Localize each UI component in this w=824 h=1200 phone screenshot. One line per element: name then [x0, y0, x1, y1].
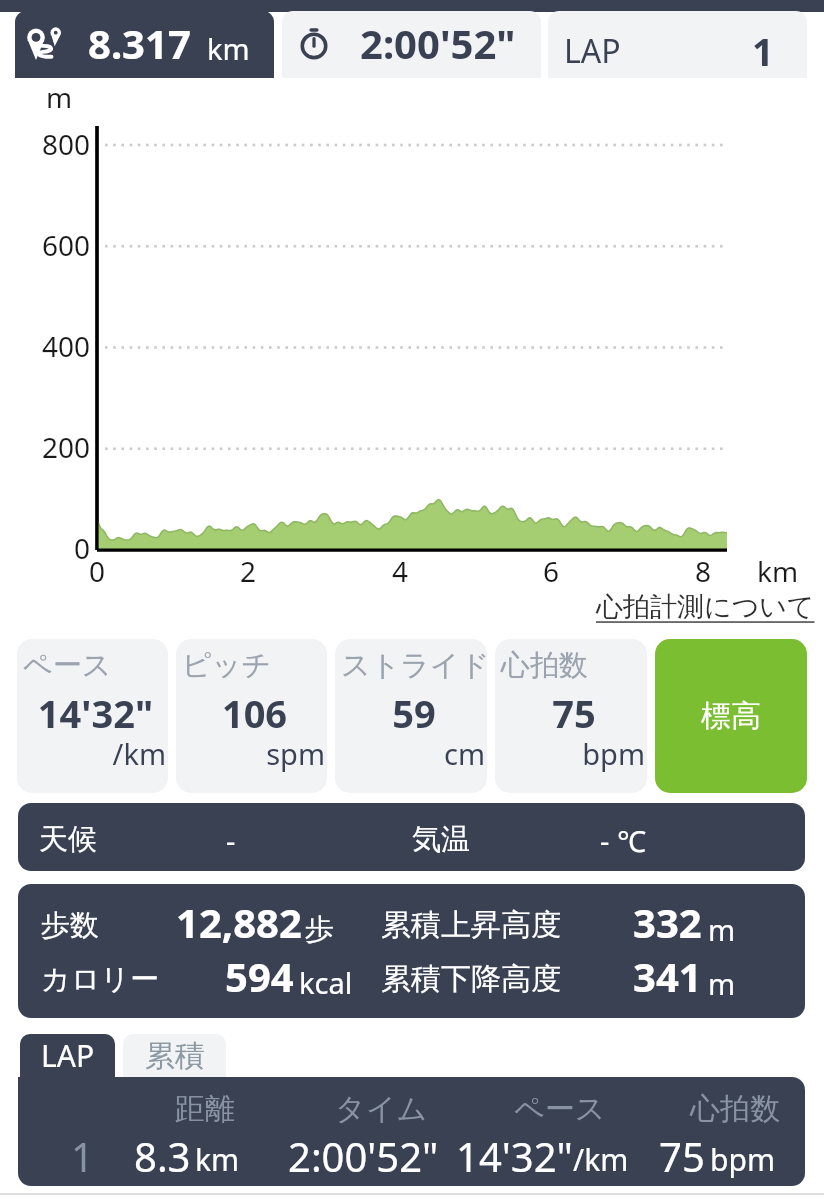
staticText: 600: [0, 226, 90, 264]
staticText: LAP: [564, 29, 621, 73]
staticText: 8: [673, 552, 733, 590]
button[interactable]: ストライド: [335, 639, 487, 793]
staticText: 天候: [39, 821, 97, 858]
button[interactable]: 距離: [18, 1077, 805, 1186]
staticText: タイム: [335, 1090, 428, 1128]
staticText: 1: [752, 25, 774, 77]
button[interactable]: 標高: [655, 639, 807, 793]
staticText: 594: [225, 949, 294, 1003]
button[interactable]: ペース: [17, 639, 168, 793]
staticText: ピッチ: [182, 647, 272, 684]
staticText: 59: [338, 687, 487, 739]
staticText: 12,882: [176, 895, 302, 949]
staticText: 歩: [305, 911, 334, 948]
staticText: LAP: [41, 1035, 95, 1076]
staticText: 200: [0, 428, 90, 466]
button[interactable]: 心拍数: [495, 639, 647, 793]
staticText: 2:00'52": [288, 1129, 439, 1183]
other: Distance: [27, 26, 61, 60]
staticText: 2:00'52": [360, 16, 516, 70]
staticText: /km: [17, 734, 166, 773]
staticText: km: [195, 1139, 240, 1180]
staticText: 75: [498, 687, 647, 739]
staticText: 400: [0, 327, 90, 365]
staticText: ペース: [514, 1090, 606, 1128]
button[interactable]: ピッチ: [176, 639, 327, 793]
staticText: m: [708, 910, 736, 949]
staticText: 心拍数: [690, 1090, 780, 1128]
staticText: kcal: [299, 963, 353, 1002]
staticText: m: [46, 78, 73, 116]
button[interactable]: LAP: [548, 11, 807, 78]
staticText: ストライド: [341, 647, 487, 684]
staticText: 8.317: [88, 16, 191, 70]
staticText: cm: [335, 734, 485, 773]
staticText: 6: [521, 552, 581, 590]
button[interactable]: 天候: [18, 803, 805, 871]
staticText: ペース: [23, 647, 112, 684]
staticText: 332: [633, 895, 702, 949]
staticText: 歩数: [41, 907, 99, 944]
staticText: 心拍計測について: [596, 590, 815, 624]
button[interactable]: Time: [282, 11, 541, 78]
staticText: -: [226, 821, 236, 860]
button[interactable]: 心拍計測について: [596, 590, 815, 624]
staticText: 距離: [175, 1090, 235, 1128]
button[interactable]: LAP: [20, 1034, 115, 1077]
staticText: 0: [67, 552, 127, 590]
staticText: km: [757, 552, 799, 590]
button[interactable]: Distance: [15, 11, 274, 78]
staticText: 心拍数: [501, 647, 588, 684]
staticText: 2: [218, 552, 278, 590]
staticText: 341: [633, 949, 702, 1003]
staticText: 標高: [701, 697, 761, 735]
staticText: 0: [0, 529, 90, 567]
staticText: 4: [370, 552, 430, 590]
staticText: spm: [176, 734, 325, 773]
staticText: 累積上昇高度: [381, 906, 561, 944]
staticText: 800: [0, 125, 90, 163]
button[interactable]: 歩数: [18, 884, 805, 1018]
staticText: 75: [659, 1129, 705, 1183]
staticText: 14'32": [456, 1129, 573, 1183]
staticText: bpm: [495, 734, 645, 773]
staticText: 累積下降高度: [381, 960, 561, 998]
staticText: カロリー: [41, 961, 160, 998]
staticText: 累積: [145, 1037, 205, 1075]
button[interactable]: 累積: [123, 1034, 226, 1077]
other: Time: [297, 25, 331, 59]
staticText: km: [207, 29, 250, 68]
staticText: /km: [573, 1139, 629, 1180]
staticText: m: [708, 964, 736, 1003]
staticText: 1: [71, 1129, 94, 1183]
staticText: - ℃: [600, 821, 646, 860]
staticText: 14'32": [20, 687, 168, 739]
staticText: 気温: [412, 821, 470, 858]
staticText: 106: [179, 687, 327, 739]
staticText: bpm: [710, 1139, 775, 1180]
staticText: 8.3: [134, 1129, 191, 1183]
